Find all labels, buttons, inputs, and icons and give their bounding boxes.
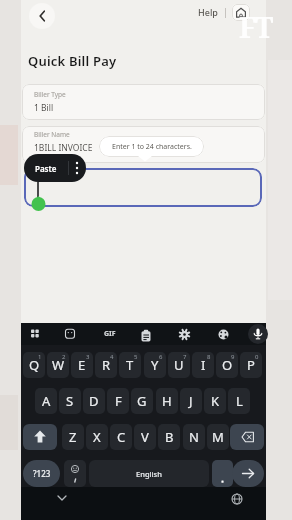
staticText: 4 (110, 353, 114, 361)
staticText: Help (198, 6, 218, 18)
staticText: GIF (104, 329, 116, 339)
button[interactable]: M (207, 424, 229, 450)
button[interactable]: W (47, 352, 69, 378)
button[interactable]: S (59, 388, 81, 414)
staticText: V (141, 428, 149, 446)
staticText: ?123 (33, 468, 51, 479)
button[interactable]: C (110, 424, 132, 450)
staticText: M (212, 428, 224, 446)
staticText: K (211, 392, 220, 410)
staticText: T (126, 356, 134, 374)
staticText: Z (69, 428, 77, 446)
button[interactable]: O (216, 352, 238, 378)
button[interactable]: D (83, 388, 105, 414)
button[interactable] (24, 168, 262, 207)
staticText: J (189, 392, 193, 410)
button[interactable]: P (240, 352, 262, 378)
button[interactable] (29, 3, 55, 29)
staticText: L (236, 392, 243, 410)
staticText: Biller Type (34, 90, 66, 99)
button[interactable]: Biller Name (22, 126, 265, 163)
button[interactable]: H (156, 388, 178, 414)
staticText: P (247, 356, 255, 374)
button[interactable]: J (180, 388, 202, 414)
button[interactable]: Z (62, 424, 84, 450)
staticText: 8 (207, 353, 211, 361)
staticText: D (89, 392, 99, 410)
button[interactable] (64, 460, 86, 487)
button[interactable]: ?123 (23, 460, 60, 487)
staticText: English (136, 469, 162, 479)
staticText: 6 (159, 353, 163, 361)
staticText: C (117, 428, 126, 446)
button[interactable]: V (134, 424, 156, 450)
staticText: Biller Name (34, 130, 70, 139)
staticText: 1BILL INVOICE (34, 142, 93, 154)
staticText: A (42, 392, 51, 410)
button[interactable]: T (119, 352, 141, 378)
button[interactable]: U (168, 352, 190, 378)
button[interactable]: X (86, 424, 108, 450)
staticText: Enter 1 to 24 characters. (112, 142, 192, 152)
staticText: N (189, 428, 199, 446)
staticText: H (162, 392, 172, 410)
staticText: O (222, 356, 233, 374)
staticText: B (165, 428, 174, 446)
staticText: G (137, 392, 147, 410)
button[interactable] (23, 424, 57, 450)
button[interactable]: Paste (24, 154, 86, 182)
button[interactable]: Q (23, 352, 45, 378)
button[interactable]: N (183, 424, 205, 450)
staticText: F (115, 392, 122, 410)
button[interactable]: I (192, 352, 214, 378)
staticText: I (201, 356, 206, 374)
staticText: S (66, 392, 74, 410)
button[interactable]: GIF (101, 325, 119, 343)
staticText: X (93, 428, 101, 446)
button[interactable] (232, 4, 250, 21)
button[interactable]: Biller Type (22, 84, 265, 120)
button[interactable]: E (71, 352, 93, 378)
button[interactable]: Y (144, 352, 166, 378)
staticText: Q (29, 356, 40, 374)
button[interactable]: L (228, 388, 250, 414)
staticText: 7 (183, 353, 187, 361)
button[interactable]: A (35, 388, 57, 414)
button[interactable]: B (158, 424, 180, 450)
staticText: Paste (35, 163, 57, 174)
button[interactable]: G (131, 388, 153, 414)
staticText: Y (151, 356, 159, 374)
button[interactable]: R (95, 352, 117, 378)
button[interactable]: English (89, 460, 209, 487)
button[interactable]: K (204, 388, 226, 414)
staticText: 1 Bill (34, 102, 54, 114)
staticText: 5 (134, 353, 138, 361)
staticText: FT (239, 8, 272, 46)
staticText: W (52, 356, 65, 374)
staticText: Quick Bill Pay (28, 52, 117, 70)
staticText: U (174, 356, 184, 374)
staticText: 2 (62, 353, 66, 361)
button[interactable]: Help (194, 4, 222, 20)
staticText: 0 (255, 353, 259, 361)
staticText: R (102, 356, 111, 374)
button[interactable]: F (107, 388, 129, 414)
staticText: 9 (231, 353, 235, 361)
staticText: 1 (38, 353, 42, 361)
staticText: E (78, 356, 86, 374)
button[interactable] (232, 460, 264, 487)
button[interactable] (212, 460, 233, 487)
staticText: 3 (86, 353, 90, 361)
button[interactable] (230, 424, 264, 450)
